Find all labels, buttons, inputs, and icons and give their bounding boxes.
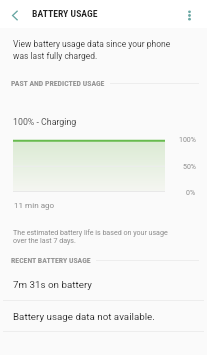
staticText: PAST AND PREDICTED USAGE (11, 79, 105, 88)
staticText: BATTERY USAGE (32, 8, 98, 19)
staticText: 50% (183, 163, 196, 171)
staticText: View battery usage data since your phone… (13, 39, 178, 61)
staticText: RECENT BATTERY USAGE (11, 256, 91, 265)
staticText: The estimated battery life is based on y… (13, 228, 171, 245)
staticText: 11 min ago (14, 200, 55, 209)
button[interactable]: Navigate up (1, 0, 29, 28)
staticText: Battery usage data not available. (13, 311, 155, 322)
button[interactable]: Battery usage data not available. (0, 301, 207, 332)
staticText: 0% (186, 189, 196, 197)
button[interactable]: 7m 31s on battery (0, 269, 207, 301)
staticText: 100% (179, 136, 196, 144)
staticText: 7m 31s on battery (13, 279, 92, 290)
staticText: 100% - Charging (13, 117, 77, 127)
button[interactable]: More options (179, 0, 207, 28)
